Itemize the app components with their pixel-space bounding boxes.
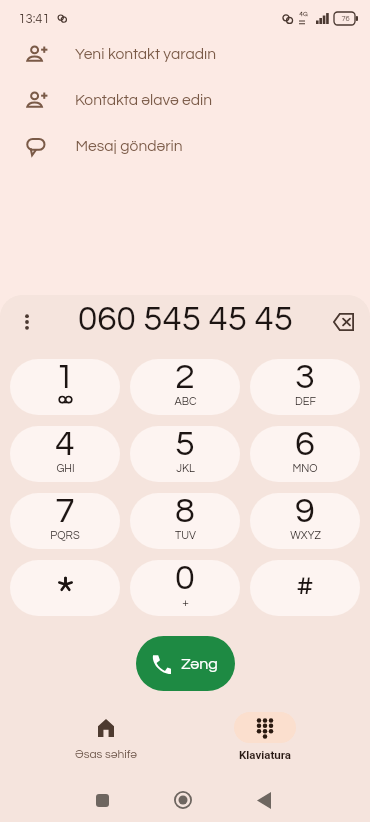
staticText: 76 xyxy=(341,15,350,23)
staticText: 7 xyxy=(55,493,75,529)
button[interactable]: Recents xyxy=(88,786,116,814)
staticText: 2 xyxy=(175,359,195,395)
button[interactable]: 5 xyxy=(130,426,240,482)
staticText: Kontakta əlavə edin xyxy=(75,92,212,108)
staticText: DEF xyxy=(295,396,316,407)
staticText: MNO xyxy=(292,463,318,474)
staticText: + xyxy=(182,596,189,608)
staticText: 9 xyxy=(295,493,315,529)
button[interactable]: Mesaj göndərin xyxy=(0,123,370,169)
staticText: # xyxy=(296,570,314,601)
staticText: 060 545 45 45 xyxy=(78,301,293,337)
button[interactable]: 3 xyxy=(250,359,360,415)
button[interactable]: Kontakta əlavə edin xyxy=(0,77,370,123)
button[interactable]: 1 xyxy=(10,359,120,415)
button[interactable]: 7 xyxy=(10,493,120,549)
button[interactable]: 4 xyxy=(10,426,120,482)
staticText: ABC xyxy=(174,396,197,407)
button[interactable]: 8 xyxy=(130,493,240,549)
staticText: Zəng xyxy=(181,656,218,672)
button[interactable]: Yeni kontakt yaradın xyxy=(0,31,370,77)
staticText: WXYZ xyxy=(290,530,321,541)
button[interactable]: Back xyxy=(250,786,278,814)
button[interactable]: Klaviatura xyxy=(185,706,344,766)
staticText: 4G xyxy=(299,11,308,18)
staticText: 1 xyxy=(55,359,75,395)
button[interactable]: 6 xyxy=(250,426,360,482)
staticText: GHI xyxy=(56,463,75,474)
button[interactable]: 0 xyxy=(130,560,240,616)
button[interactable]: Home xyxy=(169,786,197,814)
staticText: 4 xyxy=(55,426,75,462)
button[interactable]: 9 xyxy=(250,493,360,549)
button[interactable]: 2 xyxy=(130,359,240,415)
staticText: 6 xyxy=(295,426,315,462)
staticText: 8 xyxy=(175,493,195,529)
staticText: Yeni kontakt yaradın xyxy=(75,46,216,62)
button[interactable]: Əsas səhifə xyxy=(26,706,185,766)
staticText: 0 xyxy=(175,560,195,596)
staticText: JKL xyxy=(176,463,195,474)
staticText: PQRS xyxy=(50,530,80,541)
button[interactable]: Backspace xyxy=(328,305,358,339)
staticText: Klaviatura xyxy=(239,748,291,761)
staticText: 3 xyxy=(295,359,315,395)
button[interactable]: More options xyxy=(14,305,40,339)
staticText: TUV xyxy=(175,530,196,541)
staticText: Mesaj göndərin xyxy=(75,138,183,154)
button[interactable]: # xyxy=(250,560,360,616)
staticText: 13:41 xyxy=(18,12,50,25)
staticText: 5 xyxy=(175,426,195,462)
button[interactable]: Zəng xyxy=(136,636,235,691)
button[interactable] xyxy=(10,560,120,616)
staticText: Əsas səhifə xyxy=(75,748,137,760)
